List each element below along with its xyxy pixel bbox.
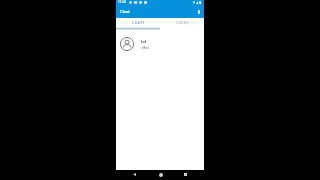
button[interactable]: USERS <box>160 18 204 28</box>
button[interactable]: Back <box>130 170 139 179</box>
button[interactable]: CHATS <box>116 18 160 28</box>
staticText: offline <box>141 46 150 50</box>
staticText: USERS <box>176 21 189 25</box>
button[interactable]: Home <box>156 170 165 179</box>
staticText: Chat <box>120 9 130 15</box>
staticText: lol <box>141 39 147 45</box>
staticText: 11:24 <box>118 0 126 4</box>
staticText: CHATS <box>132 21 145 25</box>
button[interactable]: lol <box>116 31 204 56</box>
button[interactable]: More options <box>194 6 204 18</box>
button[interactable]: Recents <box>181 170 190 179</box>
